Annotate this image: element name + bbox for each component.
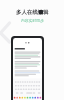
staticText: 内容实时同步: [21, 18, 44, 23]
staticText: 多人在线编辑: [16, 9, 49, 16]
